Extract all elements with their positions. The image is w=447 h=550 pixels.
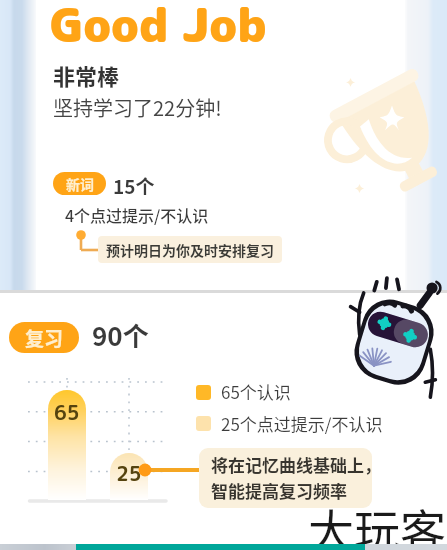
staticText: 15个 xyxy=(113,172,155,200)
staticText: 25 xyxy=(116,459,142,487)
staticText: 90个 xyxy=(92,316,149,354)
button[interactable]: 将在记忆曲线基础上， xyxy=(199,448,372,508)
staticText: Good Job xyxy=(50,0,267,57)
staticText: 25个点过提示/不认识 xyxy=(221,411,383,436)
staticText: 坚持学习了22分钟! xyxy=(53,93,222,122)
staticText: 预计明日为你及时安排复习 xyxy=(106,240,274,260)
staticText: 大玩客 xyxy=(308,495,446,550)
staticText: 4个点过提示/不认识 xyxy=(65,203,209,226)
button[interactable]: 新词 xyxy=(53,172,106,195)
staticText: 65 xyxy=(54,398,80,426)
staticText: 65个认识 xyxy=(221,379,291,404)
other: Mascot robot xyxy=(345,275,446,399)
staticText: 新词 xyxy=(66,174,94,194)
button[interactable]: 预计明日为你及时安排复习 xyxy=(98,236,282,263)
staticText: 将在记忆曲线基础上， xyxy=(211,452,372,477)
button[interactable]: 复习 xyxy=(9,322,79,353)
staticText: 复习 xyxy=(25,324,64,352)
staticText: 非常棒 xyxy=(53,59,120,91)
staticText: 智能提高复习频率 xyxy=(211,478,347,503)
